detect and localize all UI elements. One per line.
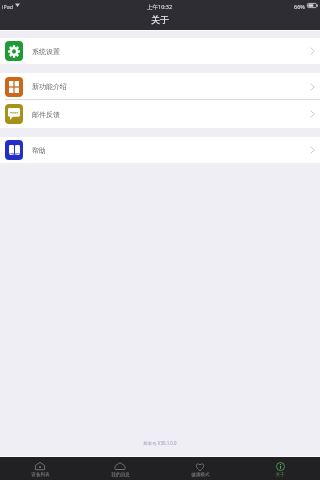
staticText: 关于 [151, 14, 169, 25]
button[interactable]: 系统设置 [0, 38, 320, 64]
staticText: 66% [294, 3, 305, 10]
button[interactable]: 新功能介绍 [0, 73, 320, 100]
button[interactable]: Device list [0, 457, 80, 480]
staticText: 版本号 V30.1.0.0 [143, 440, 177, 446]
button[interactable]: My messages [80, 457, 160, 480]
staticText: 新功能介绍 [32, 82, 67, 91]
staticText: 系统设置 [32, 47, 60, 56]
staticText: 邮件反馈 [32, 110, 60, 119]
staticText: 健康模式 [191, 472, 210, 478]
staticText: 帮助 [32, 146, 46, 155]
button[interactable]: About [240, 457, 320, 480]
button[interactable]: Health mode [160, 457, 240, 480]
button[interactable]: 邮件反馈 [0, 100, 320, 128]
staticText: 上午10:32 [147, 3, 173, 11]
staticText: iPad [2, 3, 14, 10]
staticText: 设备列表 [31, 472, 50, 478]
staticText: 关于 [275, 472, 285, 478]
button[interactable]: 帮助 [0, 137, 320, 163]
staticText: 我的消息 [111, 472, 130, 478]
